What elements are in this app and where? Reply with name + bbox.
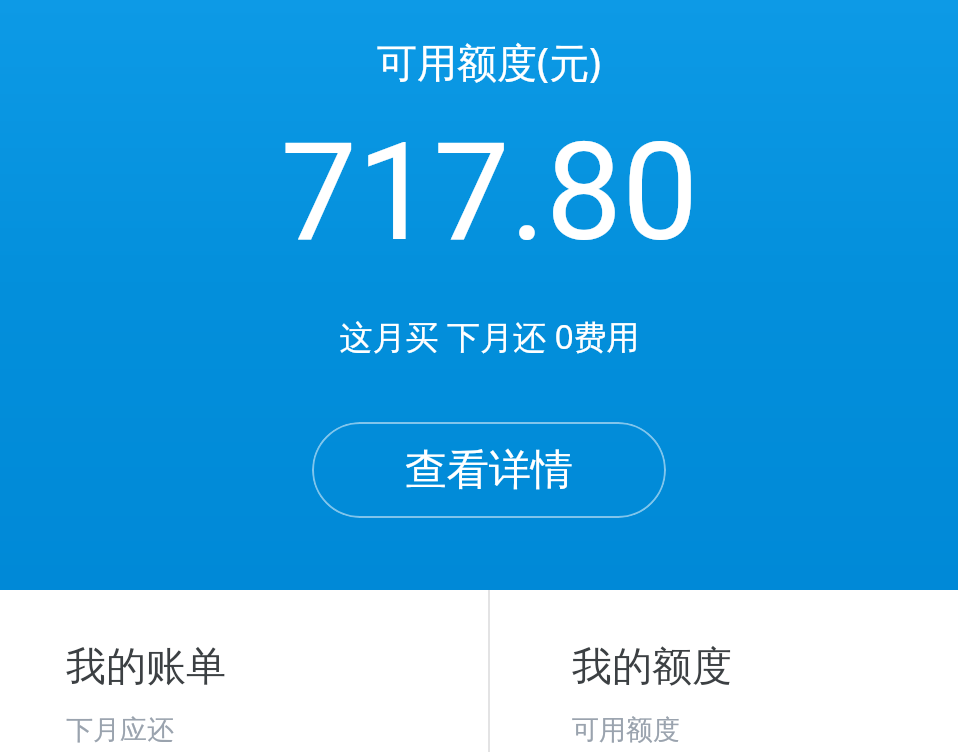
staticText: 可用额度(元) (377, 34, 601, 89)
button[interactable]: 查看详情 (312, 422, 666, 518)
staticText: 我的账单 (66, 641, 226, 691)
staticText: 这月买 下月还 0费用 (339, 314, 640, 359)
staticText: 我的额度 (572, 641, 732, 691)
staticText: 可用额度 (572, 713, 680, 747)
staticText: 查看详情 (405, 444, 573, 497)
button[interactable]: 我的账单 (0, 590, 488, 752)
button[interactable]: 我的额度 (490, 590, 958, 752)
staticText: 717.80 (280, 113, 699, 272)
staticText: 下月应还 (66, 713, 174, 747)
